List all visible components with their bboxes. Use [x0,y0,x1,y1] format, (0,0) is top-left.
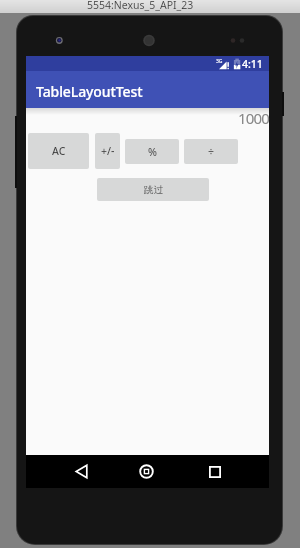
button[interactable]: Home [122,455,171,488]
button[interactable]: Recents [191,455,239,488]
staticText: 5554:Nexus_5_API_23 [87,0,194,11]
staticText: ÷ [208,145,215,159]
button[interactable]: Back [57,455,105,488]
staticText: +/- [101,144,115,158]
staticText: 4:11 [242,57,263,71]
button[interactable]: ÷ [184,139,238,164]
button[interactable]: AC [28,133,89,169]
staticText: AC [52,144,66,158]
staticText: TableLayoutTest [36,82,143,101]
staticText: 3G [216,58,223,65]
button[interactable]: % [125,139,179,164]
staticText: % [148,145,157,159]
staticText: 1000 [26,108,269,128]
button[interactable]: 跳过 [97,178,209,201]
staticText: 跳过 [144,184,163,196]
button[interactable]: +/- [95,133,120,169]
